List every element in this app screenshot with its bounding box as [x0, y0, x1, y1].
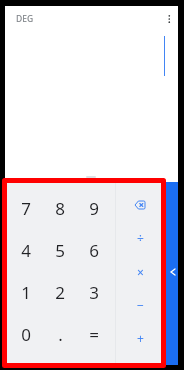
staticText: 2 — [55, 281, 65, 304]
button[interactable]: More options — [160, 8, 178, 26]
button[interactable]: 8 — [43, 187, 77, 229]
button[interactable]: Multiply — [123, 255, 157, 288]
button[interactable]: = — [77, 313, 111, 355]
button[interactable]: Add — [123, 321, 157, 354]
button[interactable]: 7 — [9, 187, 43, 229]
staticText: . — [58, 323, 63, 346]
button[interactable]: 5 — [43, 229, 77, 271]
staticText: ÷ — [137, 230, 144, 246]
staticText: 1 — [21, 281, 31, 304]
staticText: + — [137, 330, 144, 346]
button[interactable]: 9 — [77, 187, 111, 229]
button[interactable]: 1 — [9, 271, 43, 313]
button[interactable]: Delete — [123, 188, 157, 221]
button[interactable]: 2 — [43, 271, 77, 313]
staticText: 5 — [55, 239, 65, 262]
staticText: 8 — [55, 197, 65, 220]
button[interactable]: . — [43, 313, 77, 355]
staticText: − — [137, 297, 144, 313]
staticText: 7 — [21, 197, 31, 220]
button[interactable]: 0 — [9, 313, 43, 355]
button[interactable]: Divide — [123, 221, 157, 254]
staticText: = — [89, 323, 99, 346]
button[interactable]: DEG — [16, 9, 34, 29]
staticText: 9 — [89, 197, 99, 220]
button[interactable]: 4 — [9, 229, 43, 271]
staticText: 0 — [21, 323, 31, 346]
staticText: 6 — [89, 239, 99, 262]
staticText: 3 — [89, 281, 99, 304]
button[interactable]: 3 — [77, 271, 111, 313]
staticText: × — [137, 264, 144, 280]
button[interactable]: 6 — [77, 229, 111, 271]
button[interactable]: Subtract — [123, 288, 157, 321]
button[interactable]: Expand scientific keypad — [166, 182, 178, 365]
staticText: 4 — [21, 239, 31, 262]
staticText: DEG — [16, 13, 34, 25]
